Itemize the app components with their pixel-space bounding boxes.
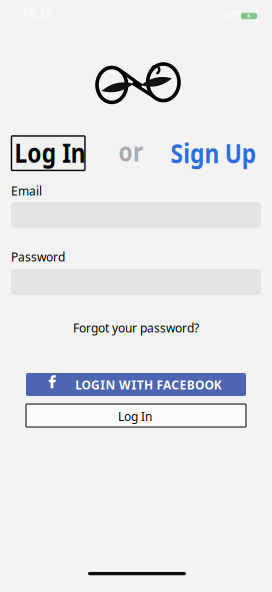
staticText: Log In [8, 135, 91, 170]
staticText: or [116, 133, 145, 169]
button[interactable]: Log In [11, 136, 85, 170]
button[interactable]: LOGIN WITH FACEBOOK [26, 373, 246, 396]
staticText: Log In [118, 408, 152, 424]
button[interactable]: Log In [26, 404, 246, 427]
staticText: Sign Up [163, 135, 264, 171]
staticText: LOGIN WITH FACEBOOK [75, 377, 222, 393]
staticText: 16:30 [21, 5, 52, 21]
staticText: Forgot your password? [73, 320, 199, 336]
staticText: Password [11, 249, 65, 265]
button[interactable]: Sign Up [163, 135, 264, 171]
staticText: Email [11, 183, 42, 199]
button[interactable]: Forgot your password? [73, 320, 199, 336]
